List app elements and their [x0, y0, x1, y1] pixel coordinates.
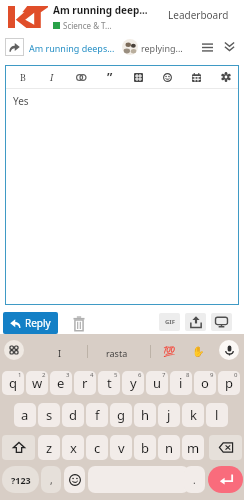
- staticText: q: [9, 374, 17, 392]
- button[interactable]: Delete draft: [70, 313, 88, 333]
- button[interactable]: i: [170, 371, 192, 395]
- staticText: r: [82, 374, 88, 392]
- staticText: .: [193, 473, 196, 487]
- button[interactable]: Symbols: [2, 466, 39, 493]
- staticText: 💯: [163, 346, 176, 358]
- staticText: Yes: [13, 94, 29, 108]
- button[interactable]: v: [110, 435, 132, 460]
- staticText: Reply: [25, 316, 51, 330]
- button[interactable]: b: [134, 435, 156, 460]
- button[interactable]: l: [206, 403, 228, 427]
- button[interactable]: o: [194, 371, 216, 395]
- button[interactable]: m: [182, 435, 204, 460]
- button[interactable]: q: [2, 371, 24, 395]
- button[interactable]: GIF: [159, 313, 180, 331]
- staticText: 1: [18, 371, 22, 379]
- staticText: o: [201, 374, 209, 392]
- button[interactable]: Calendar: [183, 66, 210, 88]
- staticText: i: [179, 374, 183, 392]
- staticText: k: [190, 406, 197, 424]
- staticText: w: [32, 374, 43, 392]
- button[interactable]: Settings: [212, 66, 239, 88]
- button[interactable]: Emoji: [154, 66, 181, 88]
- staticText: 8: [186, 371, 190, 379]
- button[interactable]: r: [74, 371, 96, 395]
- button[interactable]: x: [62, 435, 84, 460]
- button[interactable]: Keyboard options: [4, 340, 24, 360]
- button[interactable]: u: [146, 371, 168, 395]
- staticText: I: [50, 71, 54, 83]
- staticText: ?123: [11, 474, 31, 486]
- staticText: 0: [234, 371, 238, 379]
- staticText: z: [46, 439, 53, 457]
- button[interactable]: Menu: [198, 38, 216, 56]
- staticText: ,: [50, 473, 53, 487]
- button[interactable]: d: [62, 403, 84, 427]
- staticText: d: [69, 406, 77, 424]
- button[interactable]: Period: [184, 466, 205, 493]
- button[interactable]: Reply: [3, 312, 58, 334]
- button[interactable]: e: [50, 371, 72, 395]
- button[interactable]: k: [182, 403, 204, 427]
- button[interactable]: Reply to post: [5, 38, 24, 56]
- button[interactable]: Collapse: [220, 38, 238, 56]
- staticText: c: [94, 439, 101, 457]
- button[interactable]: Emoji: [64, 466, 85, 493]
- staticText: p: [225, 374, 233, 392]
- staticText: f: [95, 406, 100, 424]
- button[interactable]: t: [98, 371, 120, 395]
- staticText: g: [117, 406, 125, 424]
- staticText: 9: [210, 371, 214, 379]
- staticText: 7: [162, 371, 166, 379]
- button[interactable]: Upload: [185, 313, 206, 331]
- button[interactable]: Comma: [41, 466, 61, 493]
- button[interactable]: Link: [67, 66, 94, 88]
- button[interactable]: Voice input: [219, 340, 239, 360]
- staticText: u: [153, 374, 162, 392]
- staticText: Am running deep...: [53, 3, 148, 17]
- button[interactable]: n: [158, 435, 180, 460]
- staticText: v: [118, 439, 125, 457]
- button[interactable]: Enter: [208, 466, 243, 493]
- button[interactable]: c: [86, 435, 108, 460]
- button[interactable]: j: [158, 403, 180, 427]
- button[interactable]: Backspace: [209, 435, 242, 460]
- staticText: GIF: [165, 318, 175, 326]
- button[interactable]: Preview: [211, 313, 232, 331]
- button[interactable]: Italic: [38, 66, 65, 88]
- staticText: t: [107, 374, 112, 392]
- button[interactable]: y: [122, 371, 144, 395]
- button[interactable]: Bold: [9, 66, 36, 88]
- staticText: Am running deeps...: [29, 42, 115, 54]
- staticText: h: [141, 406, 150, 424]
- button[interactable]: Leaderboard: [168, 8, 229, 22]
- staticText: 2: [42, 371, 46, 379]
- staticText: 5: [114, 371, 118, 379]
- button[interactable]: w: [26, 371, 48, 395]
- staticText: l: [215, 406, 219, 424]
- button[interactable]: Quote: [96, 66, 123, 88]
- staticText: m: [187, 439, 200, 457]
- button[interactable]: Table: [125, 66, 152, 88]
- button[interactable]: Space: [88, 466, 189, 493]
- button[interactable]: Shift: [2, 435, 35, 460]
- staticText: n: [165, 439, 174, 457]
- button[interactable]: p: [218, 371, 240, 395]
- button[interactable]: z: [38, 435, 60, 460]
- staticText: ✋: [192, 346, 205, 358]
- staticText: x: [70, 439, 77, 457]
- staticText: j: [167, 406, 171, 424]
- staticText: B: [20, 71, 26, 83]
- staticText: 6: [138, 371, 142, 379]
- button[interactable]: g: [110, 403, 132, 427]
- button[interactable]: s: [38, 403, 60, 427]
- staticText: 3: [66, 371, 70, 379]
- staticText: replying...: [141, 42, 183, 54]
- staticText: s: [46, 406, 53, 424]
- staticText: I: [58, 347, 62, 359]
- button[interactable]: f: [86, 403, 108, 427]
- staticText: ”: [107, 69, 113, 85]
- button[interactable]: h: [134, 403, 156, 427]
- button[interactable]: a: [14, 403, 36, 427]
- staticText: y: [130, 374, 137, 392]
